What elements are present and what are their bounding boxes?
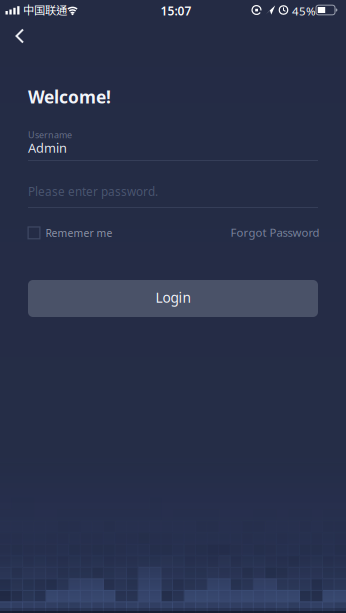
staticText: 中国联通 [23,4,67,17]
button[interactable]: Login [28,280,318,317]
staticText: 45% [292,3,316,19]
staticText: Rememer me [45,226,112,240]
button[interactable]: Forgot Password [230,225,319,240]
button[interactable]: Back [0,22,44,50]
staticText: 15:07 [160,3,191,19]
staticText: Admin [28,139,67,156]
button[interactable]: Rememer me [27,226,112,240]
staticText: Forgot Password [230,225,319,240]
staticText: Login [155,288,190,307]
staticText: Username [28,129,72,141]
staticText: Welcome! [28,85,111,109]
staticText: Please enter password. [28,183,158,199]
